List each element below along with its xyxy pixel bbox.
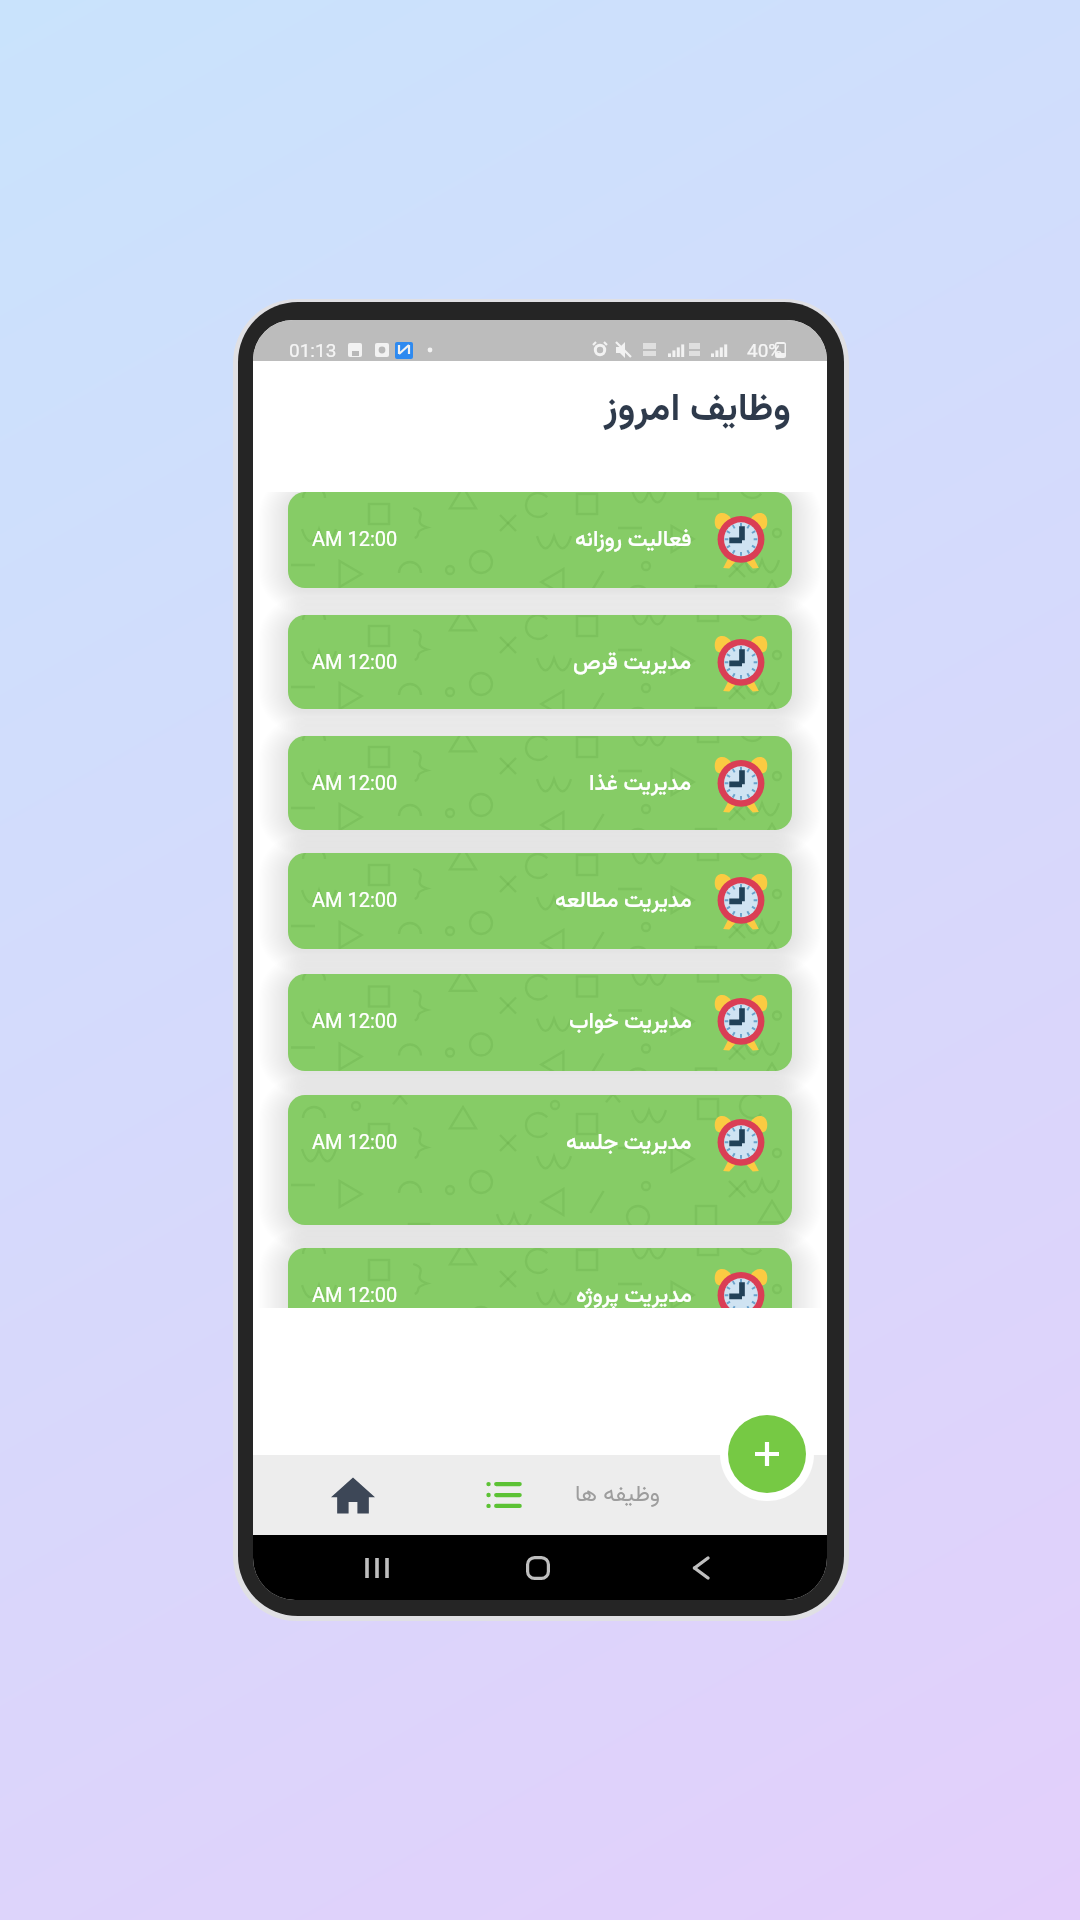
staticText: وظیفه ها: [575, 1477, 661, 1513]
staticText: مدیریت قرص: [573, 646, 692, 680]
staticText: AM 12:00: [312, 888, 398, 911]
staticText: AM 12:00: [312, 771, 398, 794]
staticText: 40%: [747, 339, 783, 361]
staticText: مدیریت جلسه: [566, 1126, 692, 1160]
button[interactable]: وظیفه ها: [486, 1466, 661, 1524]
button[interactable]: AM 12:00: [288, 615, 792, 709]
button[interactable]: AM 12:00: [288, 853, 792, 949]
staticText: AM 12:00: [312, 1009, 398, 1032]
staticText: مدیریت خواب: [569, 1005, 692, 1039]
staticText: مدیریت غذا: [589, 767, 692, 801]
staticText: AM 12:00: [312, 1130, 398, 1153]
staticText: مدیریت مطالعه: [555, 884, 692, 918]
button[interactable]: Home: [515, 1545, 561, 1591]
button[interactable]: AM 12:00: [288, 736, 792, 830]
staticText: AM 12:00: [312, 650, 398, 673]
staticText: AM 12:00: [312, 1283, 398, 1306]
button[interactable]: AM 12:00: [288, 1248, 792, 1308]
button[interactable]: AM 12:00: [288, 1095, 792, 1225]
staticText: مدیریت پروژه: [576, 1279, 692, 1308]
button[interactable]: Recent apps: [355, 1545, 401, 1591]
button[interactable]: AM 12:00: [288, 492, 792, 588]
staticText: فعالیت روزانه: [575, 523, 692, 557]
staticText: وظایف امروز: [603, 381, 791, 440]
staticText: AM 12:00: [312, 527, 398, 550]
button[interactable]: Home: [325, 1467, 381, 1523]
button[interactable]: Back: [677, 1545, 723, 1591]
button[interactable]: Add task: [728, 1415, 806, 1493]
button[interactable]: AM 12:00: [288, 974, 792, 1071]
staticText: 01:13: [289, 339, 337, 361]
